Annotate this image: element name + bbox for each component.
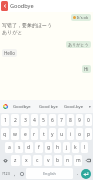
staticText: Goodbye: [10, 2, 34, 10]
staticText: c: [36, 157, 39, 164]
button[interactable]: Emoji: [18, 168, 25, 179]
staticText: p: [87, 131, 91, 138]
staticText: .: [77, 170, 79, 177]
button[interactable]: Google: [2, 103, 9, 110]
button[interactable]: 9: [76, 114, 83, 126]
staticText: Good bye: [39, 104, 58, 110]
button[interactable]: Good-bye: [61, 100, 87, 113]
button[interactable]: h: [54, 142, 61, 153]
button[interactable]: Goodbye: [9, 100, 35, 113]
button[interactable]: ?123: [0, 168, 12, 179]
button[interactable]: s: [15, 142, 23, 153]
button[interactable]: c: [33, 155, 42, 166]
button[interactable]: y: [49, 128, 56, 140]
staticText: 0: [87, 117, 90, 124]
staticText: u: [60, 131, 64, 138]
button[interactable]: g: [45, 142, 52, 153]
staticText: v: [47, 157, 50, 164]
button[interactable]: .: [74, 168, 81, 179]
button[interactable]: Hello: [4, 50, 15, 56]
staticText: m: [76, 157, 81, 164]
staticText: 9: [78, 117, 81, 124]
staticText: Good-bye: [64, 104, 84, 110]
button[interactable]: 5: [40, 114, 47, 126]
button[interactable]: b: [54, 155, 62, 166]
button[interactable]: j: [63, 142, 70, 153]
button[interactable]: v: [44, 155, 52, 166]
button[interactable]: 0: [85, 114, 92, 126]
button[interactable]: a: [5, 142, 13, 153]
staticText: g: [47, 144, 51, 151]
staticText: 7: [60, 117, 63, 124]
staticText: 写错了，要象的ほーう: [2, 22, 53, 28]
staticText: i: [70, 131, 72, 138]
button[interactable]: 2: [11, 114, 19, 126]
staticText: k: [74, 144, 77, 151]
button[interactable]: x: [22, 155, 31, 166]
button[interactable]: It's ok: [73, 15, 89, 20]
button[interactable]: Enter: [81, 169, 91, 179]
staticText: a: [8, 144, 11, 151]
staticText: n: [66, 157, 70, 164]
staticText: b: [56, 157, 60, 164]
staticText: x: [25, 157, 28, 164]
staticText: t: [43, 131, 45, 138]
staticText: ,: [14, 171, 16, 177]
staticText: w: [13, 131, 17, 138]
staticText: ありがとう: [68, 42, 89, 47]
staticText: ▾: [89, 105, 91, 109]
button[interactable]: 7: [58, 114, 65, 126]
button[interactable]: f: [35, 142, 43, 153]
staticText: 8: [69, 117, 72, 124]
staticText: l: [84, 144, 86, 151]
button[interactable]: p: [85, 128, 92, 140]
staticText: s: [18, 144, 21, 151]
button[interactable]: 4: [31, 114, 38, 126]
button[interactable]: d: [25, 142, 33, 153]
staticText: 1: [4, 117, 7, 124]
staticText: f: [38, 144, 40, 151]
button[interactable]: t: [40, 128, 47, 140]
button[interactable]: w: [11, 128, 19, 140]
staticText: z: [14, 157, 17, 164]
button[interactable]: m: [74, 155, 82, 166]
button[interactable]: ,: [12, 168, 18, 179]
button[interactable]: u: [58, 128, 65, 140]
staticText: ありがと: [2, 29, 23, 35]
button[interactable]: e: [21, 128, 29, 140]
staticText: 2: [14, 117, 17, 124]
button[interactable]: 1: [1, 114, 9, 126]
button[interactable]: Shift: [1, 155, 9, 166]
button[interactable]: Hi: [84, 66, 89, 72]
button[interactable]: 3: [21, 114, 29, 126]
button[interactable]: More suggestions: [87, 100, 93, 113]
button[interactable]: Backspace: [84, 155, 92, 166]
staticText: j: [66, 144, 68, 151]
staticText: o: [78, 131, 82, 138]
staticText: e: [24, 131, 27, 138]
staticText: It's ok: [77, 15, 89, 20]
button[interactable]: ありがとう: [68, 42, 89, 47]
button[interactable]: Good bye: [35, 100, 61, 113]
button[interactable]: i: [67, 128, 74, 140]
button[interactable]: Back: [1, 1, 8, 11]
button[interactable]: z: [11, 155, 20, 166]
staticText: 4: [33, 117, 36, 124]
button[interactable]: o: [76, 128, 83, 140]
staticText: Hello: [4, 50, 15, 56]
staticText: r: [33, 131, 36, 138]
button[interactable]: n: [64, 155, 72, 166]
button[interactable]: l: [81, 142, 88, 153]
staticText: q: [3, 131, 7, 138]
button[interactable]: k: [72, 142, 79, 153]
staticText: ?123: [2, 171, 10, 176]
button[interactable]: 6: [49, 114, 56, 126]
button[interactable]: English: [26, 168, 73, 179]
button[interactable]: 8: [67, 114, 74, 126]
staticText: h: [56, 144, 60, 151]
staticText: d: [27, 144, 31, 151]
staticText: Goodbye: [13, 104, 31, 110]
button[interactable]: q: [1, 128, 9, 140]
button[interactable]: r: [31, 128, 38, 140]
staticText: y: [51, 131, 54, 138]
